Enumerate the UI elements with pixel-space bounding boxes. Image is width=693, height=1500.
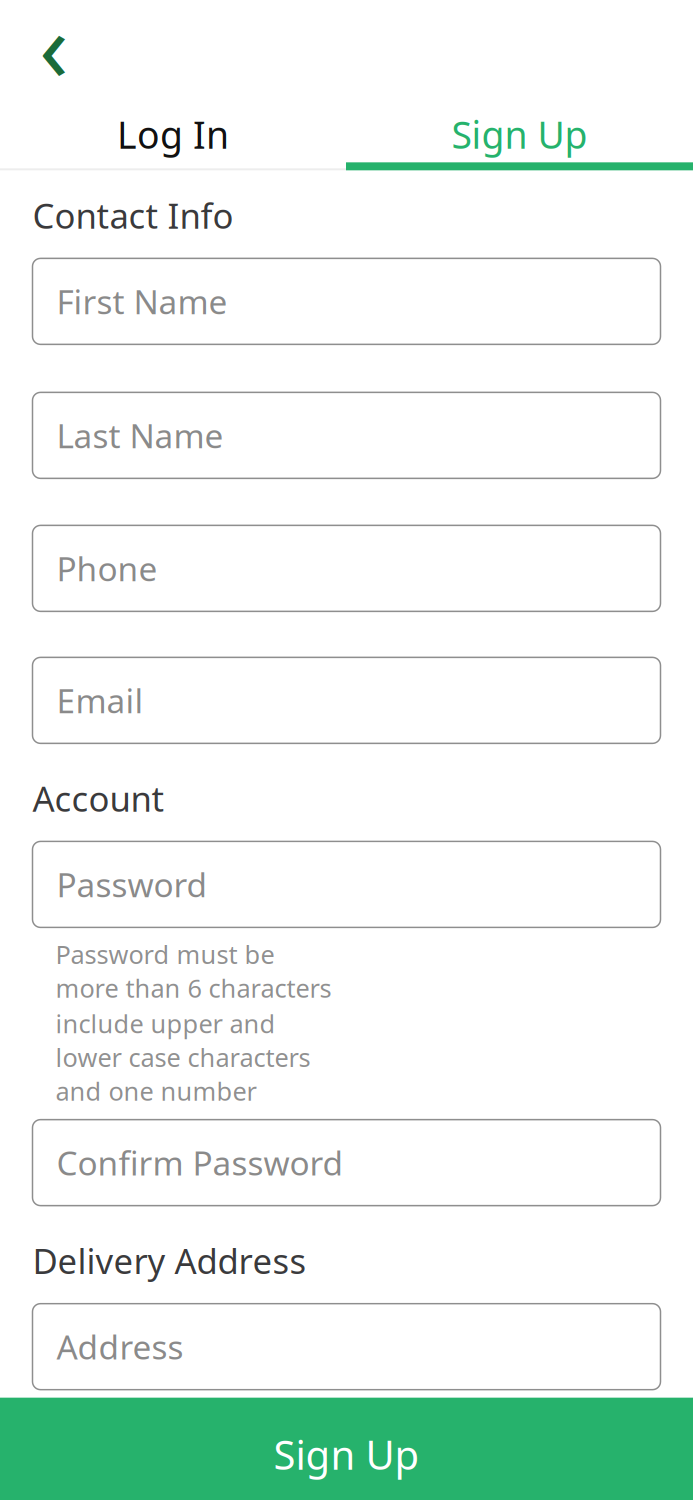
button[interactable]: Log In bbox=[0, 106, 346, 162]
button[interactable]: First Name bbox=[32, 258, 660, 344]
staticText: Password must be more than 6 characters bbox=[55, 937, 331, 1005]
staticText: Sign Up bbox=[273, 1428, 419, 1481]
staticText: Password bbox=[56, 862, 207, 907]
staticText: Delivery Address bbox=[32, 1238, 306, 1284]
staticText: ‹ bbox=[39, 0, 69, 108]
staticText: Email bbox=[56, 678, 143, 722]
staticText: Address bbox=[56, 1324, 183, 1369]
button[interactable]: Confirm Password bbox=[32, 1120, 660, 1206]
button[interactable]: Email bbox=[32, 657, 660, 743]
staticText: Confirm Password bbox=[56, 1140, 343, 1185]
button[interactable]: Back bbox=[22, 12, 86, 76]
staticText: Sign Up bbox=[451, 110, 587, 159]
button[interactable]: Last Name bbox=[32, 392, 660, 478]
staticText: Contact Info bbox=[32, 192, 233, 238]
staticText: include upper and lower case characters … bbox=[55, 1007, 310, 1108]
button[interactable]: Password bbox=[32, 841, 660, 927]
staticText: First Name bbox=[56, 279, 227, 323]
staticText: Account bbox=[32, 775, 164, 821]
button[interactable]: Sign Up bbox=[346, 106, 693, 162]
button[interactable]: Sign Up bbox=[0, 1398, 693, 1500]
staticText: Phone bbox=[56, 546, 157, 590]
staticText: Log In bbox=[117, 110, 229, 159]
button[interactable]: Phone bbox=[32, 525, 660, 611]
button[interactable]: Address bbox=[32, 1304, 660, 1390]
staticText: Last Name bbox=[56, 413, 223, 457]
